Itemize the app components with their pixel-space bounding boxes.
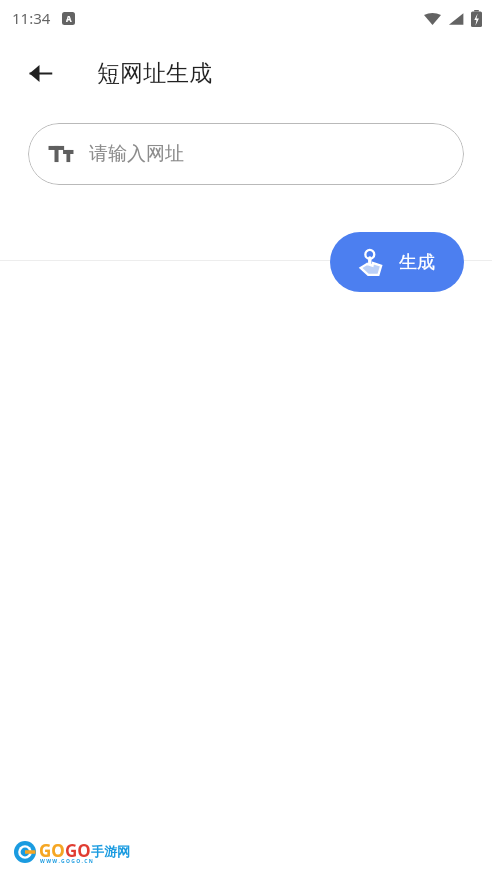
staticText: 请输入网址 xyxy=(89,142,184,166)
button[interactable]: 请输入网址 xyxy=(28,123,464,185)
staticText: 11:34 xyxy=(12,8,51,28)
staticText: GO xyxy=(65,839,91,862)
staticText: 手游网 xyxy=(91,843,130,859)
button[interactable]: Back xyxy=(16,49,64,97)
staticText: 生成 xyxy=(399,251,435,274)
staticText: 短网址生成 xyxy=(97,59,212,88)
other: Generate xyxy=(359,249,386,276)
staticText: W W W . G O G O . C N xyxy=(40,858,93,865)
button[interactable]: Generate xyxy=(330,232,464,292)
staticText: A xyxy=(66,13,72,24)
staticText: GO xyxy=(39,839,65,862)
